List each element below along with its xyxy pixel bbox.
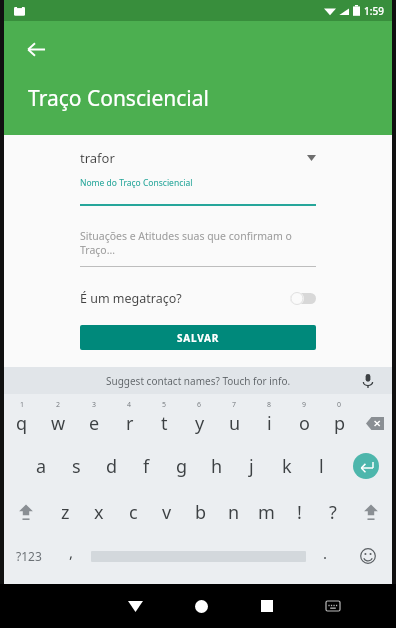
button[interactable]: Switch keyboard	[300, 584, 366, 628]
button[interactable]: v	[150, 489, 184, 535]
staticText: v	[162, 500, 172, 525]
staticText: SALVAR	[177, 331, 220, 345]
button[interactable]: É um megatraço?	[80, 285, 316, 311]
staticText: 5	[162, 400, 167, 410]
staticText: p	[334, 411, 346, 436]
button[interactable]: b	[184, 489, 217, 535]
staticText: 6	[197, 400, 202, 410]
button[interactable]: j	[234, 443, 269, 489]
staticText: k	[282, 454, 292, 479]
button[interactable]: Back	[16, 29, 56, 69]
button[interactable]: .	[308, 535, 343, 577]
button[interactable]: Voice input	[358, 371, 378, 391]
button[interactable]: c	[116, 489, 150, 535]
staticText: 0	[337, 400, 342, 410]
staticText: g	[176, 454, 188, 479]
button[interactable]: Shift	[4, 489, 48, 535]
staticText: a	[36, 454, 47, 479]
button[interactable]: 1	[4, 397, 40, 443]
button[interactable]: Emoji	[343, 535, 392, 577]
staticText: s	[72, 454, 81, 479]
staticText: 4	[127, 400, 132, 410]
staticText: ?	[329, 500, 337, 525]
staticText: !	[297, 500, 302, 525]
staticText: h	[211, 454, 223, 479]
button[interactable]: 4	[112, 397, 147, 443]
button[interactable]: Suggest contact names? Touch for info.	[106, 374, 291, 388]
button[interactable]: 3	[76, 397, 112, 443]
staticText: q	[16, 411, 28, 436]
button[interactable]: Recents	[234, 584, 300, 628]
button[interactable]: !	[283, 489, 316, 535]
button[interactable]: g	[164, 443, 199, 489]
staticText: 7	[232, 400, 237, 410]
button[interactable]: Back	[102, 584, 168, 628]
button[interactable]: 7	[217, 397, 252, 443]
staticText: 9	[302, 400, 307, 410]
staticText: o	[299, 411, 310, 436]
staticText: ,	[69, 542, 74, 562]
staticText: i	[267, 411, 272, 436]
button[interactable]: 6	[182, 397, 217, 443]
button[interactable]: 0	[322, 397, 357, 443]
staticText: 8	[267, 400, 272, 410]
button[interactable]: trafor	[80, 145, 316, 171]
button[interactable]: ,	[54, 535, 89, 577]
button[interactable]: f	[129, 443, 164, 489]
staticText: É um megatraço?	[80, 290, 182, 307]
button[interactable]: Backspace	[357, 397, 392, 443]
staticText: r	[126, 411, 134, 436]
staticText: 2	[56, 400, 61, 410]
button[interactable]: z	[48, 489, 82, 535]
button[interactable]: 9	[287, 397, 322, 443]
button[interactable]: k	[269, 443, 304, 489]
staticText: x	[94, 500, 104, 525]
staticText: .	[323, 543, 328, 563]
button[interactable]: Home	[168, 584, 234, 628]
button[interactable]: n	[217, 489, 250, 535]
button[interactable]: 2	[40, 397, 76, 443]
staticText: 3	[92, 400, 97, 410]
button[interactable]: x	[82, 489, 116, 535]
button[interactable]: Situações e Atitudes suas que confirmam …	[80, 229, 316, 257]
staticText: y	[195, 411, 205, 436]
button[interactable]: SALVAR	[80, 325, 316, 350]
staticText: 1	[20, 400, 25, 410]
staticText: c	[129, 500, 138, 525]
staticText: d	[106, 454, 118, 479]
staticText: w	[51, 411, 66, 436]
staticText: ?123	[16, 548, 42, 564]
staticText: trafor	[80, 149, 115, 167]
staticText: 1:59	[364, 4, 384, 18]
button[interactable]: l	[304, 443, 339, 489]
staticText: b	[195, 500, 207, 525]
staticText: f	[143, 454, 150, 479]
staticText: e	[89, 411, 100, 436]
button[interactable]: a	[23, 443, 59, 489]
button[interactable]: 8	[252, 397, 287, 443]
staticText: Nome do Traço Consciencial	[80, 177, 193, 189]
button[interactable]: Enter	[339, 443, 392, 489]
button[interactable]: ?	[316, 489, 349, 535]
staticText: l	[319, 454, 324, 479]
button[interactable]: d	[94, 443, 129, 489]
staticText: j	[249, 454, 254, 479]
button[interactable]: m	[250, 489, 283, 535]
button[interactable]: Space	[89, 535, 308, 577]
button[interactable]: s	[59, 443, 94, 489]
staticText: m	[258, 500, 275, 525]
staticText: z	[61, 500, 70, 525]
staticText: Traço Consciencial	[28, 84, 209, 113]
button[interactable]: 5	[147, 397, 182, 443]
staticText: u	[229, 411, 241, 436]
button[interactable]: ?123	[4, 535, 54, 577]
button[interactable]: h	[199, 443, 234, 489]
button[interactable]: Shift	[349, 489, 392, 535]
staticText: t	[161, 411, 168, 436]
staticText: n	[228, 500, 240, 525]
